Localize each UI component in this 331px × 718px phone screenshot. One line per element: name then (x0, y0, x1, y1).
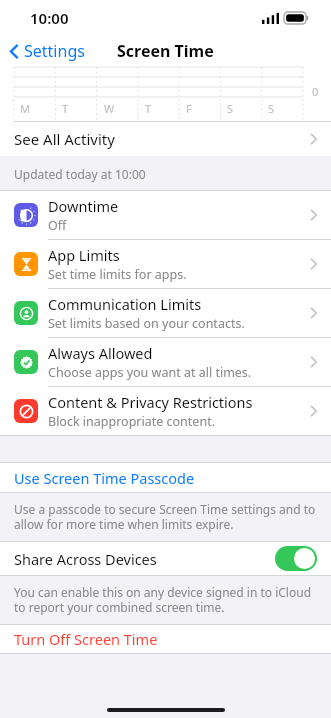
staticText: Settings (24, 40, 85, 62)
staticText: M (20, 101, 30, 116)
staticText: Set time limits for apps. (48, 266, 187, 283)
staticText: W (104, 101, 115, 116)
staticText: Turn Off Screen Time (14, 629, 158, 649)
staticText: 10:00 (30, 8, 69, 28)
button[interactable]: Always Allowed (0, 338, 331, 386)
staticText: T (62, 101, 69, 116)
staticText: S (268, 101, 275, 116)
staticText: Always Allowed (48, 343, 153, 363)
staticText: T (145, 101, 152, 116)
staticText: Use Screen Time Passcode (14, 468, 195, 488)
staticText: See All Activity (14, 129, 115, 149)
staticText: S (227, 101, 234, 116)
staticText: Communication Limits (48, 294, 202, 314)
button[interactable]: Share Across Devices (0, 542, 331, 575)
button[interactable]: Downtime (0, 191, 331, 239)
staticText: Screen Time (117, 40, 214, 62)
staticText: F (186, 101, 192, 116)
staticText: Choose apps you want at all times. (48, 364, 252, 381)
staticText: Set limits based on your contacts. (48, 315, 245, 332)
staticText: Downtime (48, 196, 119, 216)
button[interactable]: Use Screen Time Passcode (0, 463, 331, 492)
staticText: Updated today at 10:00 (14, 166, 146, 182)
staticText: Content & Privacy Restrictions (48, 392, 253, 412)
button[interactable]: App Limits (0, 240, 331, 288)
staticText: Use a passcode to secure Screen Time set… (14, 501, 317, 532)
staticText: 0 (312, 84, 319, 99)
staticText: App Limits (48, 245, 120, 265)
button[interactable]: Communication Limits (0, 289, 331, 337)
staticText: Off (48, 217, 67, 234)
staticText: You can enable this on any device signed… (14, 584, 317, 615)
staticText: Share Across Devices (14, 549, 157, 569)
button[interactable]: Turn Off Screen Time (0, 625, 331, 653)
staticText: Block inappropriate content. (48, 413, 215, 430)
button[interactable]: Settings (0, 36, 93, 66)
button[interactable]: Content & Privacy Restrictions (0, 387, 331, 435)
button[interactable]: See All Activity (0, 122, 331, 156)
